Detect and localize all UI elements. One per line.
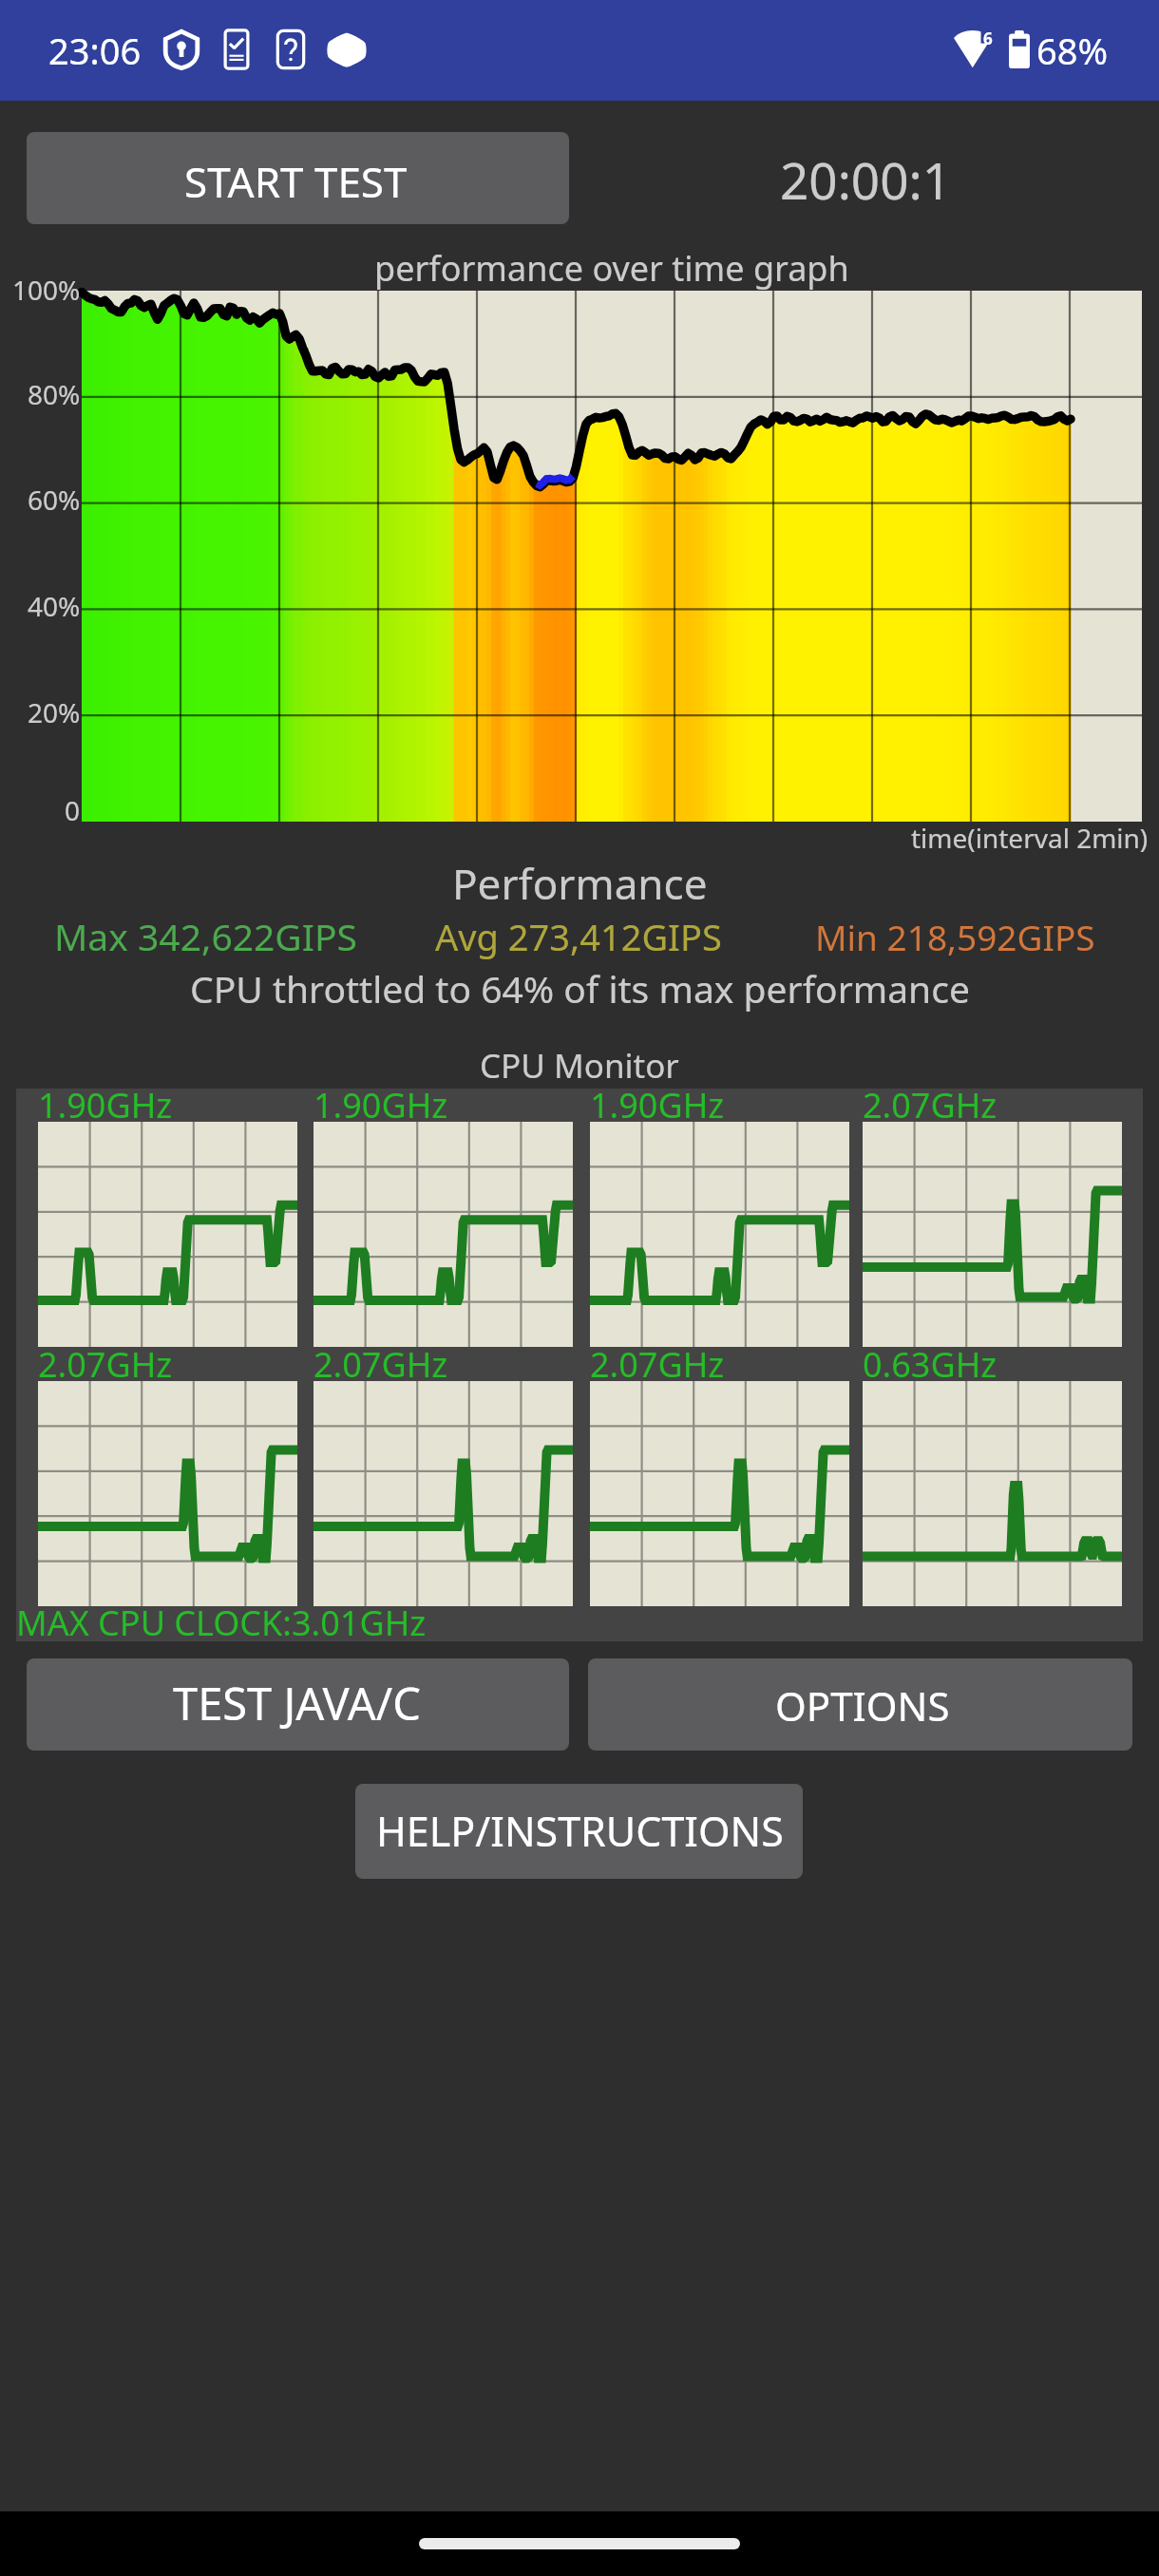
staticText: 2.07GHz: [313, 1341, 448, 1388]
staticText: 68%: [1036, 26, 1109, 75]
staticText: 20:00:1: [780, 145, 951, 214]
staticText: performance over time graph: [374, 245, 849, 292]
staticText: TEST JAVA/C: [173, 1673, 421, 1733]
staticText: CPU throttled to 64% of its max performa…: [190, 963, 970, 1013]
staticText: 0.63GHz: [863, 1341, 997, 1388]
button[interactable]: HELP/INSTRUCTIONS: [355, 1784, 803, 1879]
staticText: 1.90GHz: [38, 1082, 173, 1128]
staticText: 60%: [28, 482, 81, 518]
staticText: 1.90GHz: [590, 1082, 725, 1128]
staticText: time(interval 2min): [911, 820, 1149, 856]
staticText: 23:06: [48, 26, 142, 75]
staticText: 20%: [28, 694, 81, 730]
staticText: Max 342,622GIPS: [54, 911, 357, 961]
staticText: 2.07GHz: [863, 1082, 997, 1128]
staticText: 100%: [12, 272, 81, 308]
staticText: Avg 273,412GIPS: [435, 912, 722, 961]
staticText: 1.90GHz: [313, 1082, 448, 1128]
staticText: CPU Monitor: [480, 1043, 679, 1089]
staticText: MAX CPU CLOCK:3.01GHz: [16, 1600, 427, 1646]
staticText: 40%: [28, 588, 81, 624]
button[interactable]: START TEST: [27, 132, 569, 224]
staticText: OPTIONS: [775, 1678, 950, 1733]
staticText: START TEST: [184, 153, 408, 210]
staticText: 2.07GHz: [590, 1341, 725, 1388]
staticText: Performance: [452, 855, 708, 912]
staticText: 80%: [28, 376, 81, 412]
staticText: 6: [983, 28, 993, 49]
staticText: HELP/INSTRUCTIONS: [376, 1803, 784, 1859]
staticText: 0: [65, 792, 81, 828]
button[interactable]: TEST JAVA/C: [27, 1658, 569, 1751]
staticText: Min 218,592GIPS: [815, 913, 1095, 960]
staticText: 2.07GHz: [38, 1341, 173, 1388]
button[interactable]: OPTIONS: [588, 1658, 1132, 1751]
other: Wi-Fi signal: [954, 30, 997, 68]
